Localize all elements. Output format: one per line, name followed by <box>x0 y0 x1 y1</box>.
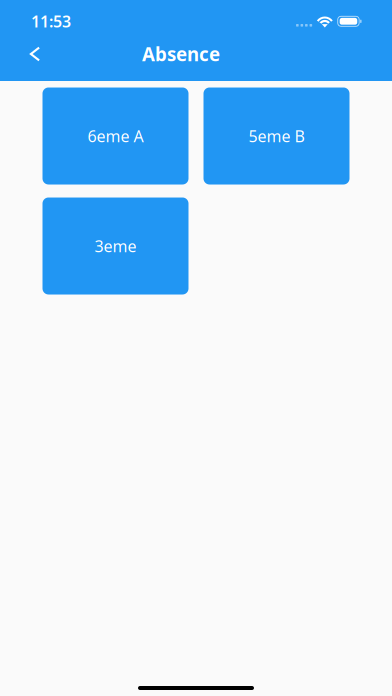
button[interactable]: 5eme B <box>203 87 349 184</box>
staticText: 5eme B <box>248 125 304 147</box>
button[interactable]: Back <box>15 34 55 74</box>
staticText: 3eme <box>94 235 136 257</box>
staticText: 11:53 <box>31 11 71 32</box>
staticText: Absence <box>142 42 220 66</box>
staticText: 6eme A <box>87 125 143 147</box>
button[interactable]: 3eme <box>42 197 188 294</box>
button[interactable]: 6eme A <box>42 87 188 184</box>
